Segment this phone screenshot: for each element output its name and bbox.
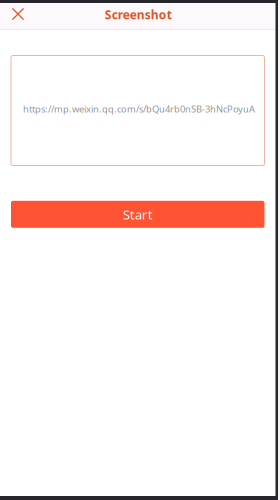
button[interactable]: Close <box>6 3 30 29</box>
staticText: https://mp.weixin.qq.com/s/bQu4rb0nSB-3h… <box>23 103 255 115</box>
staticText: Start <box>123 205 153 223</box>
button[interactable]: Start <box>11 201 264 228</box>
button[interactable]: https://mp.weixin.qq.com/s/bQu4rb0nSB-3h… <box>11 55 264 165</box>
staticText: Screenshot <box>105 6 172 22</box>
